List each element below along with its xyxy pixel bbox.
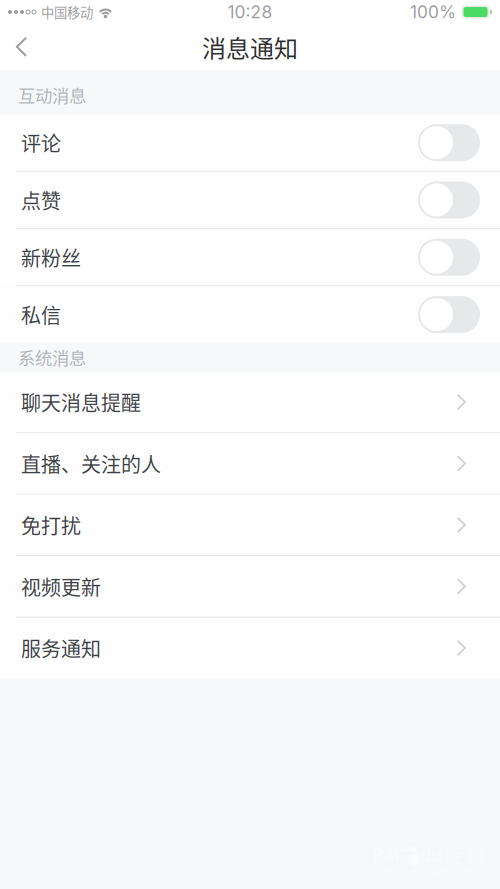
staticText: 服务通知: [21, 633, 101, 662]
button[interactable]: 点赞: [0, 172, 500, 228]
staticText: 新粉丝: [21, 243, 81, 272]
staticText: 中国移动: [41, 2, 93, 22]
button[interactable]: 新粉丝: [0, 229, 500, 285]
staticText: 系统消息: [18, 345, 86, 370]
staticText: 直播、关注的人: [21, 449, 161, 478]
staticText: 免打扰: [21, 510, 81, 539]
staticText: 消息通知: [202, 30, 298, 64]
button[interactable]: 直播、关注的人: [0, 433, 500, 494]
button[interactable]: 免打扰: [0, 495, 500, 555]
staticText: 点赞: [21, 185, 61, 214]
button[interactable]: 返回: [0, 24, 43, 70]
button[interactable]: 视频更新: [0, 556, 500, 617]
button[interactable]: 私信: [0, 286, 500, 343]
button[interactable]: 评论: [0, 114, 500, 171]
staticText: 评论: [21, 128, 61, 157]
staticText: 100%: [410, 1, 456, 22]
staticText: 视频更新: [21, 572, 101, 601]
button[interactable]: 聊天消息提醒: [0, 372, 500, 432]
button[interactable]: 服务通知: [0, 618, 500, 678]
staticText: 10:28: [227, 1, 272, 22]
staticText: 聊天消息提醒: [21, 387, 141, 416]
staticText: 私信: [21, 300, 61, 329]
staticText: 互动消息: [18, 82, 86, 107]
